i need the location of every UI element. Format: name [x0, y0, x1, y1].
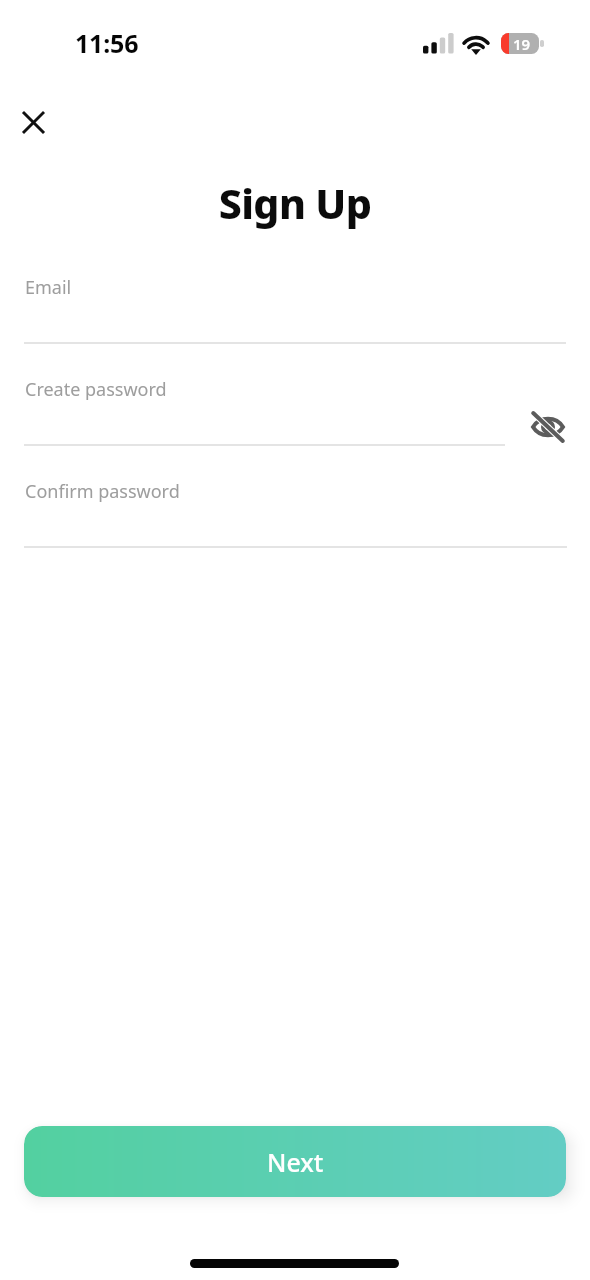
button[interactable]: Close: [11, 100, 55, 144]
button[interactable]: Create password: [0, 363, 505, 450]
staticText: Confirm password: [25, 479, 180, 504]
button[interactable]: Show password: [526, 405, 570, 449]
button[interactable]: Next: [24, 1126, 566, 1197]
staticText: Sign Up: [0, 175, 590, 231]
staticText: Create password: [25, 377, 167, 402]
button[interactable]: Email: [0, 261, 566, 348]
staticText: 19: [513, 34, 531, 54]
staticText: Email: [25, 275, 72, 300]
button[interactable]: Confirm password: [0, 465, 567, 552]
staticText: 11:56: [75, 26, 139, 60]
staticText: Next: [267, 1145, 324, 1179]
